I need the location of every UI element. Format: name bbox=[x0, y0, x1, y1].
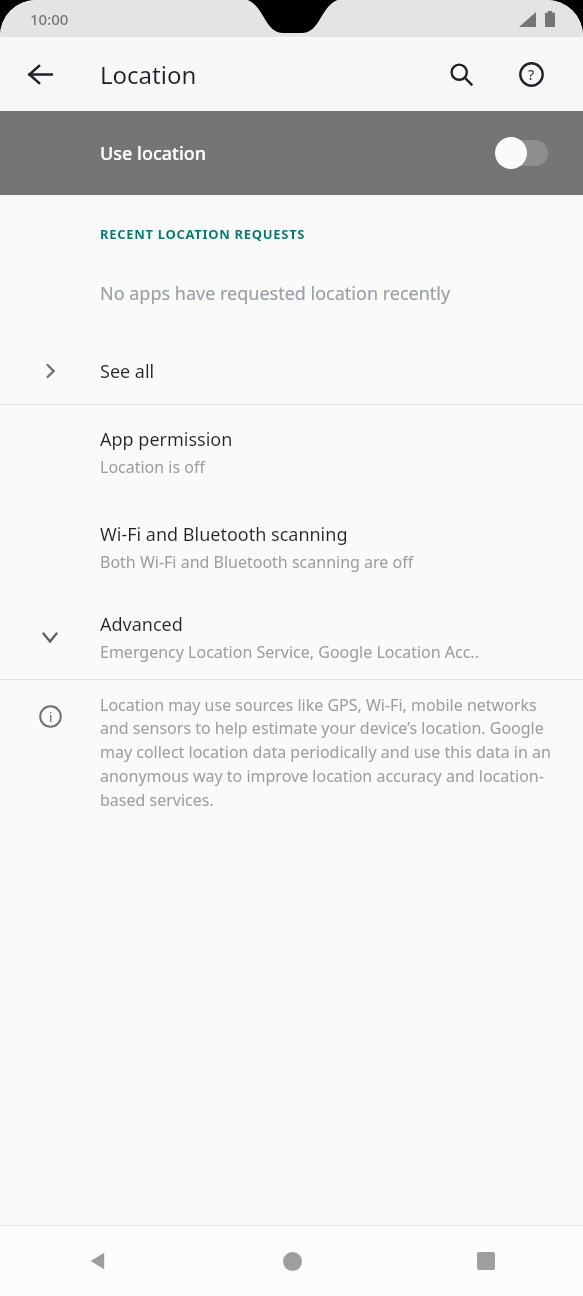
staticText: App permission bbox=[100, 427, 233, 452]
button[interactable]: Use location bbox=[0, 111, 583, 195]
button[interactable]: Recent apps bbox=[389, 1226, 583, 1296]
button[interactable]: Search bbox=[437, 50, 485, 98]
staticText: Advanced bbox=[100, 612, 183, 637]
button[interactable]: Wi-Fi and Bluetooth scanning bbox=[0, 500, 583, 595]
staticText: Location bbox=[100, 58, 197, 91]
staticText: Location may use sources like GPS, Wi-Fi… bbox=[100, 694, 555, 811]
staticText: Location is off bbox=[100, 456, 205, 478]
button[interactable]: Back bbox=[0, 1226, 195, 1296]
staticText: Both Wi-Fi and Bluetooth scanning are of… bbox=[100, 551, 414, 573]
staticText: Wi-Fi and Bluetooth scanning bbox=[100, 522, 348, 547]
staticText: Emergency Location Service, Google Locat… bbox=[100, 641, 479, 663]
button[interactable]: Help bbox=[507, 50, 555, 98]
staticText: See all bbox=[100, 359, 155, 384]
button[interactable]: Back bbox=[16, 50, 64, 98]
button[interactable]: Use location toggle bbox=[495, 135, 551, 171]
staticText: 10:00 bbox=[30, 9, 69, 29]
staticText: RECENT LOCATION REQUESTS bbox=[100, 225, 306, 243]
button[interactable]: See all bbox=[0, 338, 583, 404]
staticText: Use location bbox=[100, 141, 207, 166]
staticText: i bbox=[49, 708, 53, 726]
button[interactable]: Home bbox=[195, 1226, 389, 1296]
button[interactable]: App permission bbox=[0, 405, 583, 500]
staticText: No apps have requested location recently bbox=[100, 281, 451, 306]
button[interactable]: Advanced bbox=[0, 595, 583, 679]
staticText: ? bbox=[528, 65, 535, 84]
